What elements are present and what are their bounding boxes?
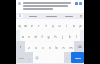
button[interactable]: m — [67, 41, 74, 52]
button[interactable]: x — [32, 41, 39, 52]
button[interactable]: s — [26, 30, 32, 41]
staticText: ☺ — [35, 56, 39, 60]
staticText: l — [76, 34, 77, 38]
button[interactable]: Send — [71, 52, 84, 63]
staticText: . — [67, 56, 68, 60]
button[interactable]: ⌫ — [74, 41, 84, 52]
button[interactable]: v — [46, 41, 53, 52]
button[interactable]: h — [52, 30, 59, 41]
button[interactable]: Send message — [79, 2, 82, 5]
button[interactable]: t — [42, 19, 49, 30]
staticText: ?123 — [18, 56, 24, 59]
button[interactable]: d — [32, 30, 38, 41]
staticText: x — [35, 45, 37, 49]
button[interactable]: ☺ — [33, 52, 40, 63]
button[interactable]: e — [28, 19, 35, 30]
staticText: y — [52, 23, 54, 27]
button[interactable]: p — [77, 19, 84, 30]
button[interactable]: Voice input — [78, 13, 83, 19]
button[interactable]: Gboard menu — [17, 14, 23, 18]
staticText: h — [54, 34, 57, 38]
staticText: Send — [75, 56, 81, 59]
button[interactable]: , — [26, 52, 33, 63]
staticText: m — [69, 45, 73, 49]
staticText: e — [31, 23, 33, 27]
button[interactable] — [23, 13, 42, 19]
button[interactable]: j — [59, 30, 66, 41]
staticText: ⌫ — [77, 45, 82, 48]
button[interactable]: z — [25, 41, 32, 52]
button[interactable]: ?123 — [16, 52, 26, 63]
staticText: b — [55, 45, 58, 49]
button[interactable]: u — [56, 19, 63, 30]
staticText: G — [19, 14, 22, 18]
staticText: w — [24, 23, 27, 27]
staticText: c — [42, 45, 44, 49]
button[interactable]: w — [22, 19, 28, 30]
staticText: s — [28, 34, 30, 38]
button[interactable]: k — [66, 30, 73, 41]
button[interactable]: q — [16, 19, 22, 30]
staticText: f — [41, 34, 43, 38]
staticText: j — [62, 34, 63, 38]
staticText: u — [58, 23, 61, 27]
staticText: k — [69, 34, 71, 38]
button[interactable]: g — [45, 30, 52, 41]
button[interactable]: c — [39, 41, 46, 52]
button[interactable]: b — [53, 41, 60, 52]
staticText: q — [18, 23, 21, 27]
button[interactable] — [60, 13, 78, 19]
staticText: d — [34, 34, 37, 38]
staticText: ⇧ — [19, 45, 22, 48]
staticText: g — [47, 34, 50, 38]
staticText: n — [62, 45, 65, 49]
button[interactable]: i — [63, 19, 70, 30]
button[interactable]: Attach — [75, 2, 78, 5]
staticText: , — [29, 56, 30, 60]
button[interactable]: ⇧ — [16, 41, 25, 52]
staticText: i — [66, 23, 67, 27]
button[interactable]: l — [73, 30, 80, 41]
button[interactable]: n — [60, 41, 67, 52]
button[interactable]: f — [38, 30, 45, 41]
staticText: p — [79, 23, 82, 27]
staticText: v — [49, 45, 51, 49]
staticText: t — [45, 23, 47, 27]
button[interactable]: o — [70, 19, 77, 30]
staticText: r — [38, 23, 40, 27]
button[interactable] — [42, 13, 60, 19]
staticText: o — [73, 23, 75, 27]
button[interactable]: a — [20, 30, 26, 41]
staticText: z — [28, 45, 30, 49]
button[interactable]: y — [49, 19, 56, 30]
staticText: a — [22, 34, 24, 38]
button[interactable]: r — [35, 19, 42, 30]
